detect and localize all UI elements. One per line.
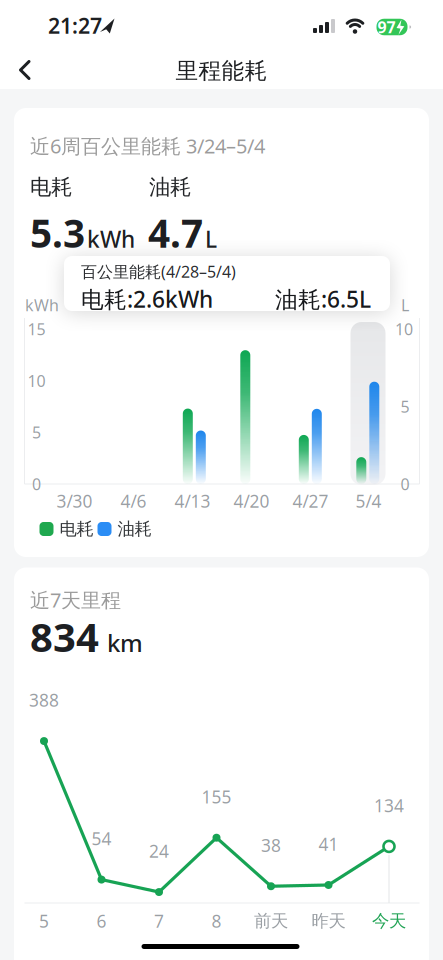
staticText: 8 — [211, 909, 221, 932]
staticText: kWh — [25, 294, 59, 316]
staticText: 昨天 — [311, 910, 345, 932]
staticText: 5 — [400, 396, 409, 417]
staticText: 41 — [318, 832, 338, 855]
staticText: 388 — [29, 688, 59, 711]
staticText: 10 — [395, 318, 413, 340]
staticText: 4/13 — [174, 489, 210, 512]
staticText: 0 — [32, 473, 41, 495]
staticText: 近7天里程 — [30, 586, 121, 613]
staticText: 油耗 — [149, 174, 191, 200]
staticText: 24 — [149, 839, 169, 862]
staticText: 4/20 — [233, 489, 269, 512]
staticText: 0 — [400, 473, 409, 495]
staticText: 10 — [27, 370, 45, 391]
staticText: 百公里能耗(4/28–5/4) — [81, 261, 236, 282]
staticText: 21:27 — [48, 11, 102, 40]
staticText: 15 — [27, 318, 45, 340]
staticText: 4/6 — [120, 489, 146, 512]
staticText: 3/30 — [56, 489, 92, 512]
staticText: 5 — [39, 909, 49, 932]
staticText: 54 — [91, 827, 111, 850]
staticText: 电耗 — [59, 518, 93, 540]
staticText: 油耗:6.5L — [275, 284, 371, 314]
staticText: kWh — [87, 224, 135, 254]
staticText: 134 — [374, 794, 404, 817]
staticText: 834 — [30, 610, 99, 663]
staticText: km — [107, 627, 143, 659]
staticText: 前天 — [254, 910, 288, 932]
staticText: 6 — [96, 909, 106, 932]
staticText: 38 — [261, 834, 281, 857]
staticText: 5.3 — [30, 207, 85, 258]
staticText: 5/4 — [355, 489, 381, 512]
staticText: 5 — [32, 422, 41, 443]
button[interactable]: 油耗 — [97, 518, 151, 540]
staticText: 4.7 — [148, 207, 203, 258]
staticText: 7 — [154, 909, 164, 932]
staticText: 电耗 — [30, 174, 72, 200]
button[interactable] — [3, 49, 47, 93]
staticText: 155 — [201, 785, 231, 808]
staticText: 4/27 — [292, 489, 328, 512]
staticText: 97 — [377, 16, 395, 38]
staticText: 里程能耗 — [175, 57, 267, 85]
staticText: L — [205, 224, 217, 254]
staticText: 近6周百公里能耗 3/24–5/4 — [30, 132, 265, 159]
staticText: 油耗 — [117, 518, 151, 540]
staticText: 电耗:2.6kWh — [81, 284, 213, 314]
staticText: L — [401, 294, 409, 316]
staticText: 今天 — [372, 910, 406, 932]
button[interactable]: 电耗 — [39, 518, 93, 540]
